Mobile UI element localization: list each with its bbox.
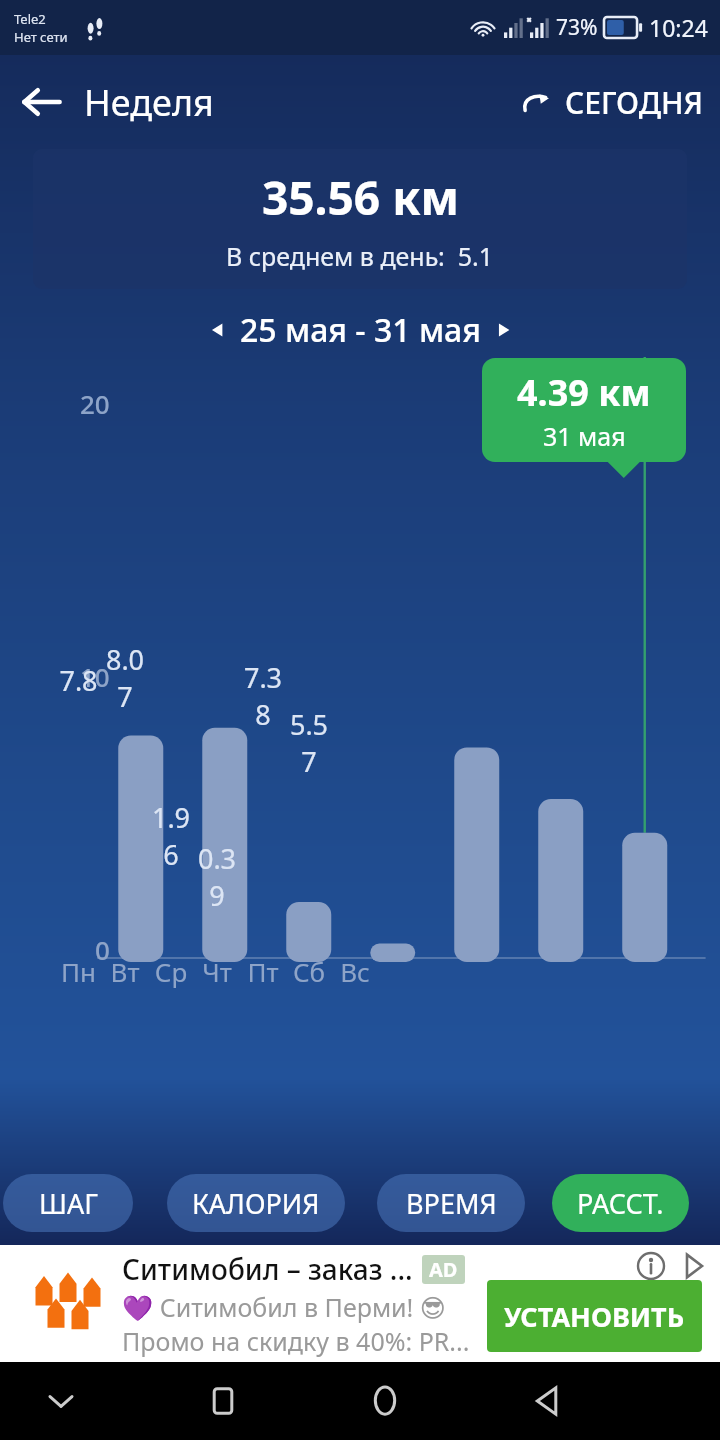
staticText: 10:24 [649,12,708,43]
staticText: AD [429,1256,458,1283]
staticText: 10 [80,659,110,694]
staticText: Tele2 [14,10,46,28]
staticText: УСТАНОВИТЬ [504,1298,685,1335]
staticText: Чт [194,954,240,989]
staticText: ВРЕМЯ [406,1185,497,1222]
staticText: Сб [286,954,332,989]
staticText: 31 мая [543,419,626,453]
button[interactable]: ВРЕМЯ [377,1174,525,1232]
staticText: Ср [148,954,194,989]
staticText: Неделя [84,78,214,127]
staticText: 20 [80,386,110,421]
button[interactable]: Back [508,1362,586,1440]
staticText: 0 [95,932,110,967]
staticText: Пт [240,954,286,989]
staticText: Вс [332,954,378,989]
staticText: 7.38 [240,659,286,733]
staticText: 35.56 км [262,166,459,229]
button[interactable]: Ad info [636,1251,666,1281]
staticText: Нет сети [14,28,68,46]
other: Redo [519,86,553,120]
button[interactable]: 4.39 км [482,358,686,462]
staticText: СЕГОДНЯ [565,82,704,123]
button[interactable]: Previous week [194,307,240,353]
button[interactable]: Recent apps [184,1362,262,1440]
button[interactable]: Next week [481,307,527,353]
button[interactable]: Hide keyboard [22,1362,100,1440]
staticText: Пн [55,954,102,989]
staticText: РАССТ. [577,1185,664,1222]
staticText: 1.96 [148,799,194,873]
button[interactable]: РАССТ. [552,1174,689,1232]
button[interactable]: Home [346,1362,424,1440]
staticText: 4.39 км [517,368,651,417]
staticText: 8.07 [102,641,148,715]
button[interactable]: Redo [519,82,720,123]
staticText: 7.8 [55,662,102,699]
button[interactable]: ШАГ [3,1174,133,1232]
staticText: Ситимобил – заказ ... [122,1250,413,1288]
staticText: В среднем в день: 5.1 [226,239,494,273]
staticText: 0.39 [194,840,240,914]
button[interactable]: Close ad [678,1251,708,1281]
button[interactable]: КАЛОРИЯ [167,1174,345,1232]
staticText: Вт [102,954,148,989]
staticText: 73% [556,13,598,42]
button[interactable]: УСТАНОВИТЬ [487,1280,702,1352]
staticText: Промо на скидку в 40%: PR... [122,1324,470,1358]
staticText: КАЛОРИЯ [192,1185,320,1222]
staticText: 25 мая - 31 мая [240,308,481,352]
button[interactable]: Back [0,60,84,144]
staticText: 5.57 [286,706,332,780]
staticText: ШАГ [39,1185,98,1222]
staticText: 💜 Ситимобил в Перми! 😎 [122,1290,446,1324]
button[interactable]: 35.56 км [33,149,687,289]
button[interactable]: Ситимобил – заказ ... [0,1245,720,1362]
